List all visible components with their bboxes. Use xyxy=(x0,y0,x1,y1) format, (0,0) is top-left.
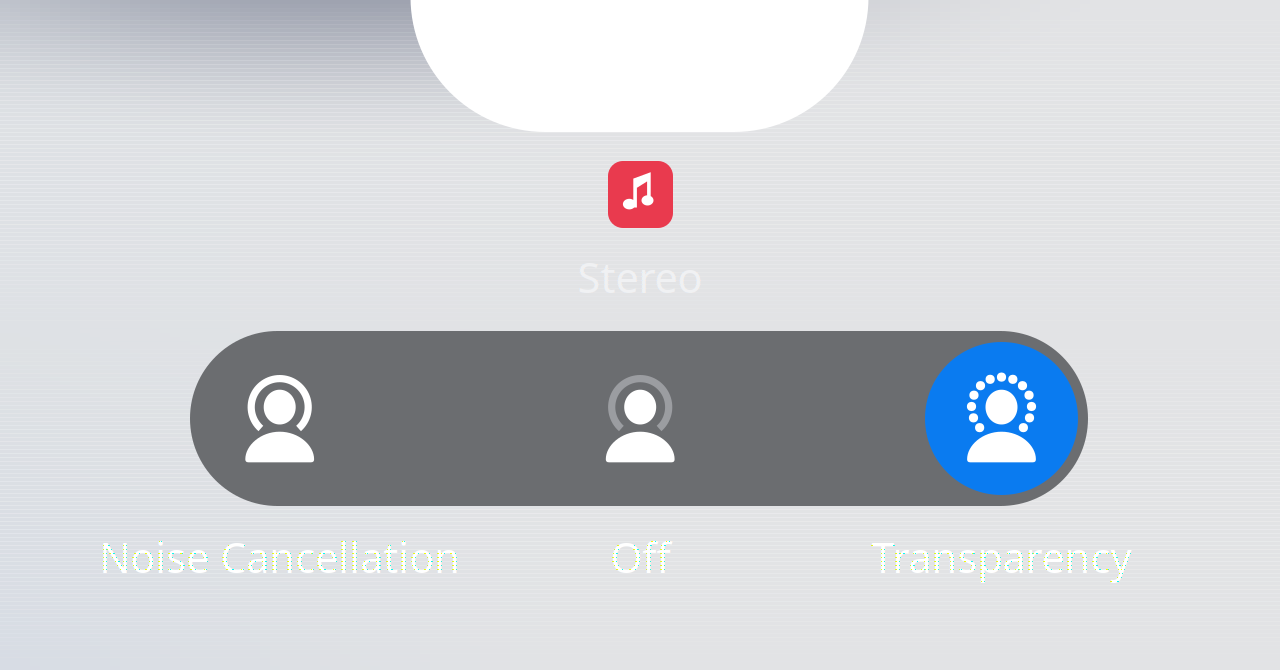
staticText: Transparency xyxy=(871,530,1131,584)
staticText: Noise Cancellation xyxy=(99,530,460,584)
button[interactable]: Transparency xyxy=(851,331,1151,576)
button[interactable]: Off xyxy=(490,331,790,576)
button[interactable]: Noise Cancellation xyxy=(130,331,430,576)
staticText: Off xyxy=(610,530,670,584)
staticText: Stereo xyxy=(577,250,702,304)
